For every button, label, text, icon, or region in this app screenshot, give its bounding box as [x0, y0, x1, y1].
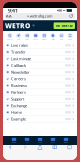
staticText: Rates — [25, 39, 29, 40]
button[interactable]: Reload — [67, 13, 75, 19]
staticText: Live rates — [11, 43, 28, 48]
button[interactable]: WETRO — [3, 21, 30, 30]
staticText: Global — [42, 39, 46, 40]
staticText: CARDS — [37, 141, 42, 143]
button[interactable]: PAY — [20, 138, 33, 143]
button[interactable]: Newsletter — [3, 69, 77, 76]
staticText: Support — [11, 96, 24, 101]
button[interactable]: CARDS — [33, 138, 46, 143]
staticText: Example — [11, 116, 26, 122]
button[interactable]: Wallet — [49, 33, 57, 40]
button[interactable]: Exchange — [3, 102, 77, 109]
button[interactable]: Menu — [30, 20, 37, 31]
staticText: Exchange — [11, 103, 27, 108]
button[interactable]: Search — [6, 33, 14, 40]
button[interactable]: HELP — [46, 138, 59, 143]
button[interactable]: Live rates — [3, 42, 77, 49]
button[interactable]: MORE — [59, 138, 72, 143]
staticText: MORE — [64, 141, 68, 143]
button[interactable]: Last minute — [3, 56, 77, 62]
button[interactable]: GET STARTED — [54, 22, 77, 29]
staticText: Search — [7, 39, 13, 40]
staticText: Cards — [33, 39, 38, 40]
button[interactable]: Page settings — [5, 13, 13, 19]
button[interactable]: Transfer — [3, 49, 77, 56]
staticText: WETRO — [5, 21, 30, 30]
staticText: Newsletter — [11, 69, 30, 75]
button[interactable]: Global — [40, 33, 49, 40]
button[interactable]: More — [66, 33, 74, 40]
button[interactable]: Example — [3, 116, 77, 123]
staticText: Last minute — [11, 56, 31, 61]
staticText: Careers — [11, 76, 26, 81]
button[interactable]: Back — [3, 143, 18, 152]
button[interactable]: Partners — [3, 89, 77, 96]
button[interactable]: Home — [3, 109, 77, 116]
staticText: 9:41 — [8, 7, 18, 14]
button[interactable]: Swap — [57, 33, 66, 40]
staticText: wetrohq.com — [30, 13, 53, 19]
button[interactable]: Rates — [23, 33, 31, 40]
staticText: HELP — [51, 141, 55, 143]
button[interactable]: HOME — [7, 138, 20, 143]
staticText: Business — [11, 83, 27, 88]
staticText: Send — [16, 39, 20, 40]
staticText: Callback — [11, 63, 26, 68]
staticText: Transfer — [11, 49, 26, 55]
button[interactable]: Forward — [18, 143, 33, 152]
button[interactable]: Cards — [31, 33, 40, 40]
staticText: GET STARTED — [56, 24, 73, 27]
staticText: Wallet — [51, 39, 54, 40]
button[interactable]: Callback — [3, 62, 77, 69]
button[interactable]: Tabs — [62, 143, 77, 152]
staticText: Partners — [11, 89, 26, 95]
staticText: More — [68, 39, 72, 40]
button[interactable]: Support — [3, 96, 77, 102]
button[interactable]: Bookmarks — [47, 143, 62, 152]
staticText: AA — [6, 13, 12, 19]
staticText: PAY — [25, 141, 28, 143]
button[interactable]: Share — [33, 143, 47, 152]
staticText: Swap — [59, 39, 63, 40]
button[interactable]: Send — [14, 33, 23, 40]
button[interactable]: Careers — [3, 76, 77, 82]
staticText: Home — [11, 110, 22, 115]
staticText: HOME — [12, 141, 16, 143]
button[interactable]: Business — [3, 82, 77, 89]
